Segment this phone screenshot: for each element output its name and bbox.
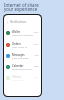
button[interactable]: Wallet — [4, 27, 41, 38]
button[interactable]: Messages — [4, 50, 41, 61]
staticText: Meeting at three pm — [12, 67, 34, 70]
other: Back — [6, 21, 9, 24]
staticText: Internet of share — [4, 2, 39, 8]
staticText: Sun — [34, 76, 39, 79]
staticText: Messages — [12, 53, 25, 57]
button[interactable]: Back — [4, 18, 41, 26]
button[interactable]: Orders — [4, 39, 41, 50]
staticText: Calendar — [12, 64, 24, 68]
staticText: Wallet — [12, 30, 21, 34]
staticText: Notifications — [10, 20, 27, 24]
staticText: Your order is shipped — [12, 45, 34, 48]
staticText: 7:05 — [34, 54, 39, 57]
staticText: Photos — [12, 75, 21, 79]
staticText: 8:12 — [34, 43, 39, 46]
staticText: your experience — [4, 6, 38, 12]
staticText: Mon — [34, 65, 39, 68]
staticText: New message arrived — [12, 56, 34, 59]
button[interactable]: Calendar — [4, 61, 41, 72]
staticText: 9:41 — [34, 31, 39, 34]
staticText: Backup is completed — [12, 78, 34, 81]
staticText: Payment received now — [12, 33, 34, 36]
button[interactable]: Photos — [4, 72, 41, 83]
staticText: Orders — [12, 42, 21, 46]
